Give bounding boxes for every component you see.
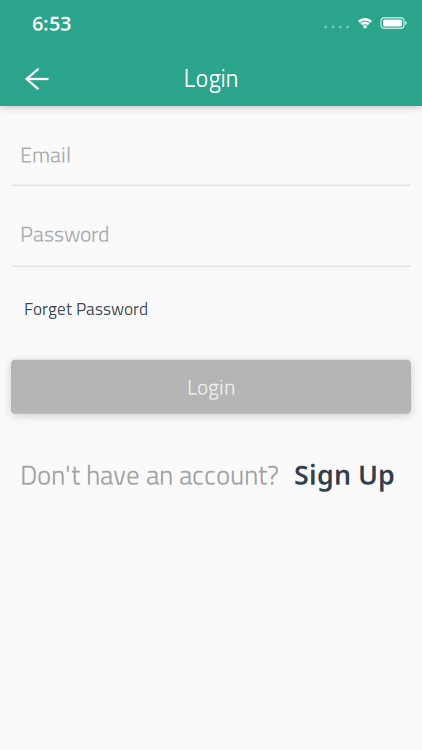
staticText: Sign Up (294, 456, 395, 493)
staticText: Forget Password (24, 296, 148, 322)
button[interactable]: Sign Up (294, 456, 395, 493)
staticText: 6:53 (32, 10, 71, 36)
button[interactable]: Forget Password (0, 296, 422, 322)
staticText: Password (20, 217, 109, 250)
button[interactable]: Login (11, 360, 411, 414)
button[interactable] (0, 59, 48, 99)
staticText: Login (187, 371, 235, 403)
button[interactable]: Email (0, 138, 422, 186)
staticText: Email (20, 138, 71, 171)
staticText: Don't have an account? (20, 454, 279, 495)
button[interactable]: Password (0, 217, 422, 267)
staticText: Login (183, 59, 238, 96)
